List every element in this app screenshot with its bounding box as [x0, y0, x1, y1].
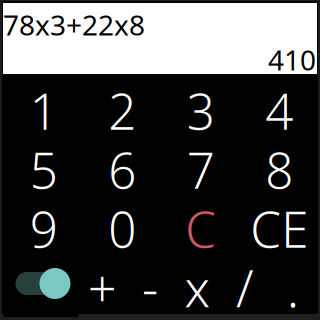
button[interactable]: 5 [4, 140, 83, 199]
staticText: 9 [30, 196, 58, 261]
staticText: 3 [187, 78, 215, 143]
staticText: C [185, 196, 216, 261]
button[interactable]: 4 [240, 81, 318, 140]
button[interactable]: x [174, 258, 221, 317]
staticText: 78x3+22x8 [3, 6, 145, 43]
button[interactable]: CE [240, 199, 318, 258]
staticText: - [142, 254, 158, 320]
button[interactable]: 8 [240, 140, 318, 199]
staticText: 0 [108, 196, 136, 261]
staticText: / [236, 254, 254, 320]
staticText: x [184, 254, 210, 320]
button[interactable]: Toggle scientific keypad [3, 258, 78, 317]
button[interactable]: 7 [161, 140, 240, 199]
staticText: 1 [30, 78, 58, 143]
staticText: 5 [30, 137, 58, 202]
button[interactable]: . [269, 258, 316, 317]
button[interactable]: - [126, 258, 174, 317]
button[interactable]: 0 [83, 199, 161, 258]
staticText: 6 [108, 137, 136, 202]
button[interactable]: / [221, 258, 269, 317]
button[interactable]: 3 [161, 81, 240, 140]
staticText: . [287, 254, 299, 320]
button[interactable]: + [78, 258, 126, 317]
staticText: 4 [265, 78, 293, 143]
staticText: 2 [108, 78, 136, 143]
staticText: 7 [187, 137, 215, 202]
button[interactable]: 1 [4, 81, 83, 140]
button[interactable]: 9 [4, 199, 83, 258]
staticText: 410 [268, 41, 316, 78]
staticText: 8 [265, 137, 293, 202]
button[interactable]: 2 [83, 81, 161, 140]
staticText: CE [250, 196, 308, 261]
staticText: + [88, 254, 117, 320]
button[interactable]: C [161, 199, 240, 258]
button[interactable]: 6 [83, 140, 161, 199]
